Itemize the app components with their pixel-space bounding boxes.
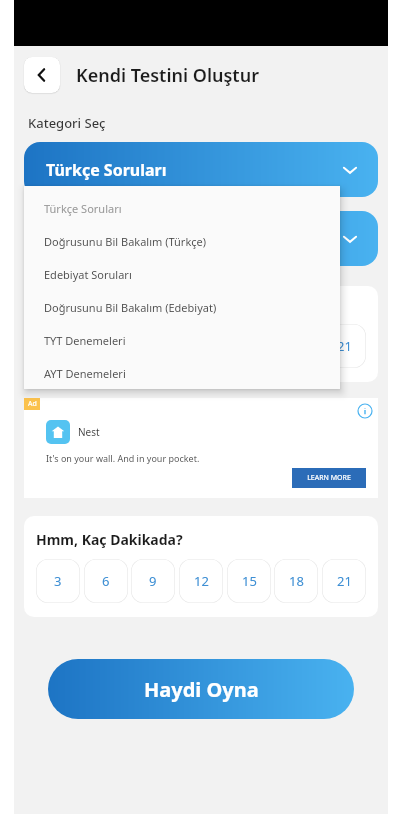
button[interactable]: 6: [84, 324, 128, 368]
staticText: 21: [337, 337, 352, 355]
staticText: Hmm, Kaç Dakikada?: [36, 530, 183, 549]
button[interactable]: 9: [131, 559, 175, 603]
button[interactable]: 15: [227, 559, 271, 603]
staticText: 21: [337, 572, 352, 590]
button[interactable]: 6: [84, 559, 128, 603]
staticText: 18: [289, 572, 304, 590]
button[interactable]: Doğrusunu Bil Bakalım (Edebiyat): [24, 291, 340, 324]
staticText: Haydi Oyna: [144, 676, 259, 703]
staticText: Doğrusunu Bil Bakalım (Edebiyat): [44, 300, 217, 315]
staticText: 15: [242, 572, 257, 590]
button[interactable]: LEARN MORE: [292, 468, 366, 488]
staticText: Kategori Seç: [28, 114, 106, 132]
staticText: Edebiyat Soruları: [44, 267, 132, 282]
button[interactable]: 3: [36, 324, 80, 368]
button[interactable]: 21: [322, 559, 366, 603]
button[interactable]: 12: [179, 559, 223, 603]
staticText: TYT Denemeleri: [44, 333, 126, 348]
button[interactable]: [24, 211, 378, 266]
staticText: 6: [102, 572, 110, 590]
staticText: Kendi Testini Oluştur: [76, 63, 259, 88]
staticText: 12: [194, 572, 209, 590]
staticText: 9: [149, 572, 157, 590]
button[interactable]: AYT Denemeleri: [24, 357, 340, 389]
staticText: Türkçe Soruları: [46, 159, 167, 181]
staticText: 3: [54, 572, 62, 590]
staticText: LEARN MORE: [307, 473, 351, 483]
button[interactable]: Edebiyat Soruları: [24, 258, 340, 291]
button[interactable]: TYT Denemeleri: [24, 324, 340, 357]
button[interactable]: Doğrusunu Bil Bakalım (Türkçe): [24, 225, 340, 258]
button[interactable]: 3: [36, 559, 80, 603]
staticText: Nest: [78, 425, 100, 439]
staticText: AYT Denemeleri: [44, 366, 126, 381]
button[interactable]: Türkçe Soruları: [24, 192, 340, 225]
staticText: 6: [102, 337, 110, 355]
staticText: Türkçe Soruları: [44, 201, 122, 216]
button[interactable]: Haydi Oyna: [48, 659, 354, 719]
staticText: Doğrusunu Bil Bakalım (Türkçe): [44, 234, 207, 249]
staticText: 3: [54, 337, 62, 355]
button[interactable]: 21: [322, 324, 366, 368]
button[interactable]: 18: [274, 559, 318, 603]
button[interactable]: Back: [24, 57, 60, 93]
staticText: It's on your wall. And in your pocket.: [46, 452, 200, 464]
staticText: Ad: [28, 399, 37, 409]
button[interactable]: Türkçe Soruları: [24, 142, 378, 197]
